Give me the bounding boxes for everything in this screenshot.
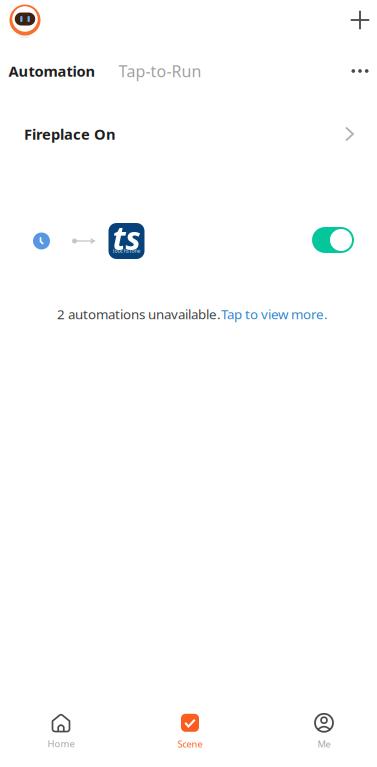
button[interactable]: Assistant (9, 4, 41, 36)
staticText: Scene (177, 738, 202, 750)
button[interactable]: Tap-to-Run (112, 53, 207, 89)
button[interactable]: Automation (2, 54, 101, 88)
staticText: Fireplace On (24, 124, 116, 144)
button[interactable]: Home (0, 704, 122, 760)
staticText: touchstone (112, 247, 140, 254)
staticText: Tap to view more. (221, 305, 328, 323)
button[interactable]: Fireplace On, enabled (306, 221, 360, 259)
staticText: 2 automations unavailable. (57, 305, 221, 323)
button[interactable]: Fireplace On (0, 115, 377, 311)
staticText: Automation (8, 61, 95, 81)
button[interactable]: 2 automations unavailable. (53, 300, 332, 328)
staticText: Tap-to-Run (118, 60, 201, 82)
button[interactable]: Scene (129, 704, 251, 760)
button[interactable]: More options (346, 59, 374, 83)
button[interactable]: Me (263, 704, 377, 760)
staticText: Home (47, 738, 74, 750)
button[interactable]: Add (346, 6, 374, 34)
staticText: ts (112, 216, 140, 259)
staticText: Me (317, 738, 330, 750)
